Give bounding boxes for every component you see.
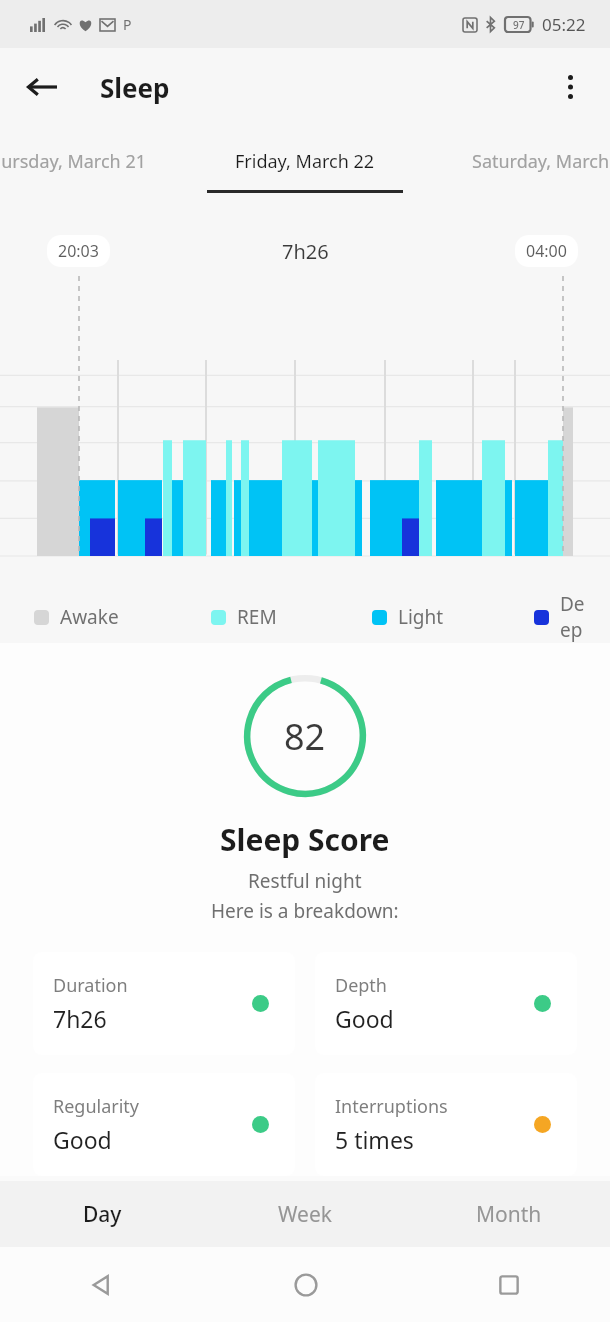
button[interactable]: Duration bbox=[33, 952, 295, 1055]
button[interactable]: More options bbox=[542, 59, 598, 115]
staticText: Light bbox=[398, 604, 444, 630]
button[interactable]: Saturday, March 23 bbox=[438, 126, 610, 196]
button[interactable]: Friday, March 22 bbox=[190, 126, 420, 196]
staticText: Regularity bbox=[53, 1094, 140, 1119]
staticText: Duration bbox=[53, 973, 128, 998]
button[interactable]: Recent apps bbox=[407, 1247, 610, 1322]
staticText: Week bbox=[278, 1200, 333, 1229]
staticText: Deep bbox=[560, 591, 586, 643]
staticText: P bbox=[123, 15, 132, 34]
staticText: Depth bbox=[335, 973, 387, 998]
button[interactable]: Regularity bbox=[33, 1073, 295, 1176]
staticText: REM bbox=[237, 604, 277, 630]
button[interactable]: Week bbox=[204, 1181, 407, 1247]
button[interactable]: Day bbox=[0, 1181, 204, 1247]
button[interactable]: Thursday, March 21 bbox=[0, 126, 178, 196]
staticText: Good bbox=[53, 1124, 112, 1155]
button[interactable]: Back bbox=[14, 59, 70, 115]
button[interactable]: Month bbox=[407, 1181, 610, 1247]
staticText: 7h26 bbox=[53, 1003, 107, 1034]
staticText: Sleep Score bbox=[220, 819, 390, 860]
staticText: Good bbox=[335, 1003, 394, 1034]
staticText: Awake bbox=[60, 604, 119, 630]
staticText: Day bbox=[83, 1200, 122, 1229]
button[interactable]: Interruptions bbox=[315, 1073, 577, 1176]
staticText: Friday, March 22 bbox=[235, 149, 375, 174]
staticText: 04:00 bbox=[526, 240, 567, 262]
button[interactable]: Depth bbox=[315, 952, 577, 1055]
staticText: Thursday, March 21 bbox=[0, 149, 146, 174]
staticText: 7h26 bbox=[282, 238, 329, 265]
staticText: Restful night bbox=[248, 868, 362, 894]
staticText: Saturday, March 23 bbox=[472, 149, 610, 174]
staticText: 82 bbox=[284, 712, 326, 761]
staticText: Interruptions bbox=[335, 1094, 448, 1119]
staticText: 5 times bbox=[335, 1124, 414, 1155]
staticText: Month bbox=[476, 1200, 542, 1229]
button[interactable]: Home bbox=[204, 1247, 407, 1322]
staticText: 20:03 bbox=[58, 240, 99, 262]
staticText: Here is a breakdown: bbox=[211, 898, 399, 924]
staticText: 05:22 bbox=[542, 13, 586, 36]
staticText: Sleep bbox=[100, 70, 170, 105]
button[interactable]: Back bbox=[0, 1247, 204, 1322]
staticText: 97 bbox=[513, 18, 525, 32]
